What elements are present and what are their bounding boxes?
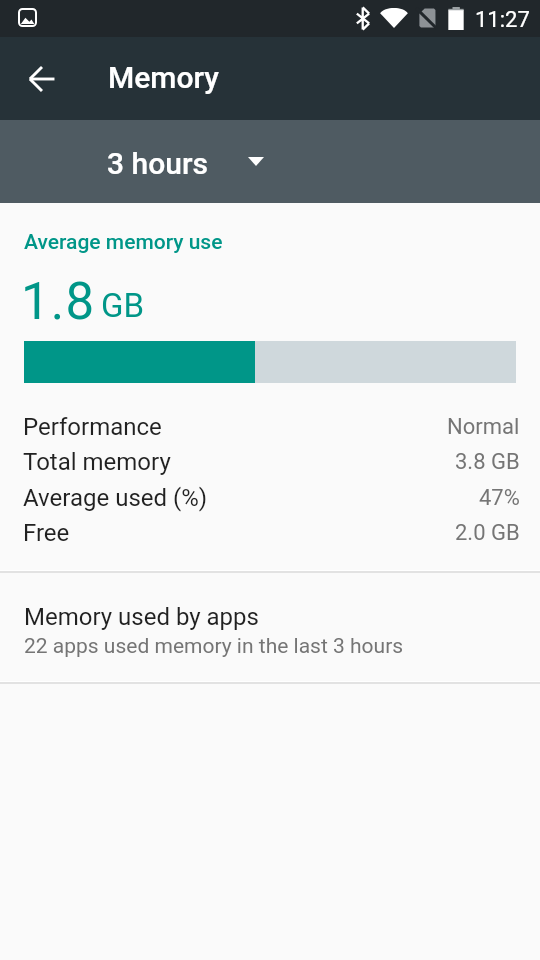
staticText: 3 hours [107,146,208,181]
staticText: GB [101,286,145,325]
button[interactable]: Memory used by apps [0,573,540,681]
button[interactable]: Navigate up [14,51,70,107]
staticText: Free [23,519,70,547]
staticText: Memory [108,60,219,95]
staticText: 47% [479,485,520,511]
button[interactable]: 3 hours [91,120,281,203]
staticText: Performance [23,413,162,441]
staticText: Memory used by apps [24,603,259,631]
staticText: 11:27 [475,7,530,33]
staticText: Total memory [23,448,171,476]
staticText: 3.8 GB [455,449,520,475]
staticText: Average used (%) [23,484,208,512]
staticText: 2.0 GB [455,520,520,546]
staticText: 1.8 [21,272,96,332]
staticText: Average memory use [24,230,223,255]
staticText: 22 apps used memory in the last 3 hours [24,634,404,659]
staticText: Normal [447,414,520,440]
